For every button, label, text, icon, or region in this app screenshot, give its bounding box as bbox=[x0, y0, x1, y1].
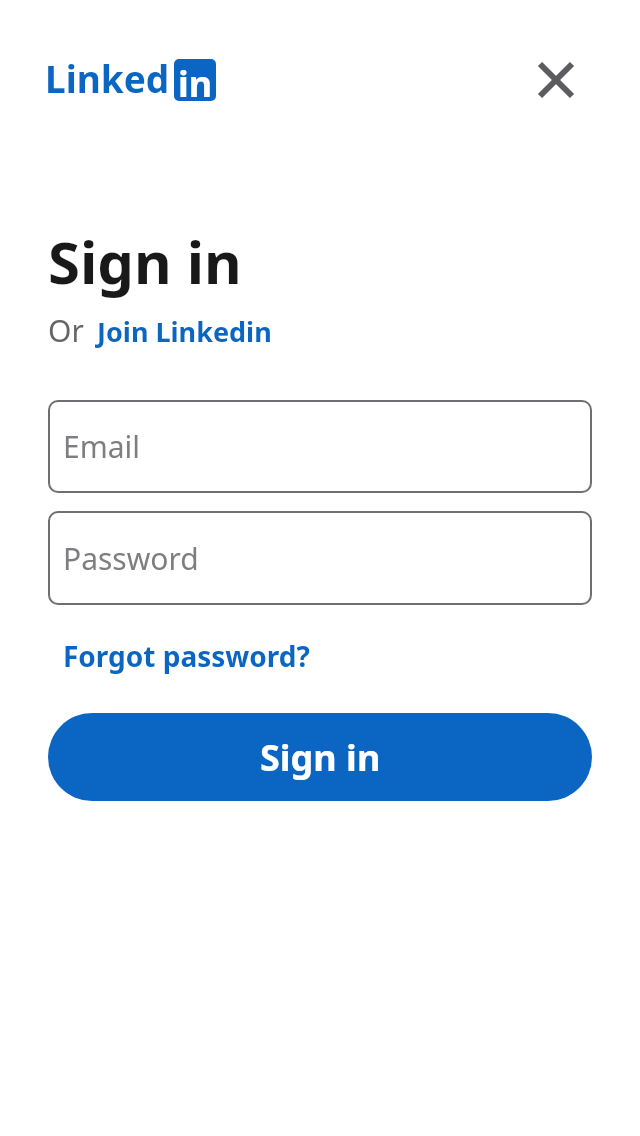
staticText: Or bbox=[48, 310, 84, 351]
button[interactable]: Email bbox=[48, 400, 592, 493]
button[interactable]: Join Linkedin bbox=[97, 313, 272, 350]
staticText: Sign in bbox=[48, 222, 242, 301]
staticText: Email bbox=[63, 426, 141, 467]
staticText: Sign in bbox=[260, 733, 381, 782]
staticText: in bbox=[178, 59, 213, 101]
button[interactable] bbox=[524, 48, 588, 112]
staticText: Password bbox=[63, 538, 199, 579]
button[interactable]: Forgot password? bbox=[63, 637, 310, 675]
staticText: Linked bbox=[45, 53, 170, 103]
button[interactable]: Password bbox=[48, 511, 592, 605]
button[interactable]: Sign in bbox=[48, 713, 592, 801]
button[interactable]: Linked bbox=[45, 53, 170, 103]
